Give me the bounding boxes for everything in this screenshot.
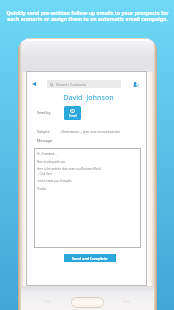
staticText: Quickly send pre-written follow-up email… <box>6 9 169 16</box>
button[interactable]: Contacts <box>130 78 142 90</box>
button[interactable]: Email <box>64 106 81 120</box>
staticText: -- Click Here <box>37 172 53 176</box>
button[interactable]: Search Contacts <box>47 80 121 88</box>
staticText: Send and Complete <box>72 256 108 261</box>
staticText: Nice chatting with you. <box>37 160 66 164</box>
staticText: David Johnson <box>28 92 149 102</box>
staticText: Hi --firstname--, <box>37 152 57 156</box>
staticText: Thanks. <box>37 187 47 191</box>
staticText: --firstname--, per our conversation <box>59 129 121 134</box>
button[interactable]: Send and Complete <box>64 254 116 262</box>
staticText: Message: <box>37 138 53 143</box>
staticText: Subject: <box>37 129 51 134</box>
staticText: Send by: <box>37 110 52 115</box>
staticText: Let me know your thoughts. <box>37 179 73 183</box>
staticText: each scenario or assign them to an autom… <box>7 15 168 22</box>
staticText: Here is the website that covers our Busi… <box>37 167 101 171</box>
staticText: Email <box>69 114 77 118</box>
staticText: Search Contacts <box>56 82 87 87</box>
button[interactable]: Back <box>28 78 39 90</box>
